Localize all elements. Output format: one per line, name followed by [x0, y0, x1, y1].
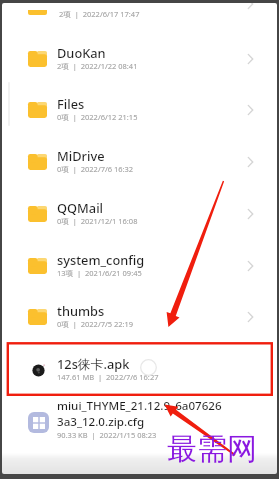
button[interactable]: Files — [2, 84, 277, 136]
staticText: DuoKan — [57, 44, 106, 61]
staticText: 最需网 — [167, 430, 257, 468]
staticText: miui_THYME_21.12.9_6a07626 — [57, 398, 222, 414]
other: Open Files — [246, 103, 256, 117]
staticText: 2项 | 2022/6/17 17:47 — [59, 9, 140, 19]
staticText: 147.61 MB | 2022/7/6 16:27 — [57, 372, 159, 382]
button[interactable]: DuoKan — [2, 33, 277, 85]
staticText: 0项 | 2021/12/1 16:08 — [57, 216, 138, 226]
other: Open system_config — [246, 259, 256, 273]
staticText: 2项 | 2022/1/22 08:41 — [57, 61, 138, 71]
other: Open DuoKan — [246, 52, 256, 66]
other: Open MiDrive — [246, 155, 256, 169]
staticText: Files — [57, 95, 85, 112]
staticText: MiDrive — [57, 147, 105, 164]
other: Open QQMail — [246, 207, 256, 221]
staticText: 90.33 KB | 2022/1/15 08:23 — [57, 430, 157, 440]
staticText: QQMail — [57, 199, 104, 216]
button[interactable]: QQMail — [2, 188, 277, 240]
staticText: 3a3_12.0.zip.cfg — [57, 414, 145, 430]
button[interactable]: 2项 | 2022/6/17 17:47 — [2, 3, 277, 22]
other: Open thumbs — [246, 310, 256, 324]
staticText: 0项 | 2022/7/6 16:32 — [57, 164, 134, 174]
staticText: thumbs — [57, 302, 105, 319]
staticText: system_config — [57, 251, 145, 268]
button[interactable]: system_config — [2, 240, 277, 292]
button[interactable]: APK file icon — [2, 348, 277, 396]
staticText: 13项 | 2021/6/21 09:45 — [57, 268, 142, 278]
button[interactable]: thumbs — [2, 291, 277, 343]
other: Select item — [140, 359, 157, 376]
other: APK file icon — [30, 362, 47, 379]
staticText: 12s徕卡.apk — [57, 355, 130, 372]
button[interactable]: MiDrive — [2, 136, 277, 188]
button[interactable]: miui_THYME_21.12.9_6a07626 — [2, 398, 277, 446]
staticText: 0项 | 2022/6/12 21:15 — [57, 112, 138, 122]
staticText: 0项 | 2022/7/5 22:19 — [57, 319, 134, 329]
